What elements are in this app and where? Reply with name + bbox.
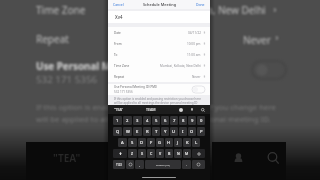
button[interactable]: Y xyxy=(161,127,169,136)
staticText: Never xyxy=(243,33,271,47)
button[interactable]: Use Personal Meeting ID toggle xyxy=(252,61,286,79)
button[interactable]: 8 xyxy=(179,116,187,125)
button[interactable]: Cancel xyxy=(113,2,124,7)
button[interactable]: , xyxy=(135,160,144,169)
button[interactable]: V xyxy=(156,149,164,158)
button[interactable]: T xyxy=(152,127,160,136)
button[interactable]: O xyxy=(188,127,196,136)
staticText: English (US) xyxy=(156,163,170,166)
staticText: E xyxy=(136,129,139,135)
button[interactable]: Enter xyxy=(192,160,205,169)
button[interactable]: Voice input xyxy=(190,108,194,112)
staticText: Mumbai, Kolkata, New Delhi xyxy=(160,64,201,68)
staticText: A xyxy=(121,140,124,146)
button[interactable]: ?123 xyxy=(113,160,125,169)
staticText: Use Personal Me xyxy=(36,60,117,73)
staticText: R xyxy=(146,129,149,135)
button[interactable]: Search xyxy=(201,108,205,112)
staticText: U xyxy=(172,129,176,135)
staticText: Time Zone xyxy=(36,3,86,17)
staticText: Q xyxy=(116,129,120,135)
button[interactable]: 0 xyxy=(197,116,205,125)
staticText: H xyxy=(167,140,171,146)
button[interactable]: Emoji xyxy=(179,108,183,112)
staticText: Repeat xyxy=(114,75,125,79)
button[interactable]: 5 xyxy=(152,116,160,125)
button[interactable]: Repeat xyxy=(108,71,210,82)
staticText: D xyxy=(140,140,144,146)
staticText: 9 xyxy=(191,118,194,124)
button[interactable]: X xyxy=(138,149,146,158)
staticText: 8 xyxy=(182,118,185,124)
button[interactable]: B xyxy=(165,149,173,158)
button[interactable]: H xyxy=(165,138,173,147)
button[interactable]: L xyxy=(192,138,200,147)
staticText: Never xyxy=(192,75,201,79)
staticText: T xyxy=(155,129,158,135)
button[interactable]: C xyxy=(147,149,155,158)
button[interactable]: S xyxy=(128,138,137,147)
button[interactable]: Search xyxy=(267,152,280,165)
staticText: Use Personal Meeting ID (PMI) xyxy=(114,85,157,89)
staticText: N xyxy=(177,151,180,156)
button[interactable]: I xyxy=(179,127,187,136)
staticText: F xyxy=(150,140,153,146)
button[interactable]: Time Zone xyxy=(108,60,210,71)
button[interactable]: From xyxy=(108,38,210,49)
button[interactable]: 3 xyxy=(133,116,142,125)
button[interactable]: A xyxy=(118,138,127,147)
button[interactable]: M xyxy=(183,149,191,158)
button[interactable]: 6 xyxy=(161,116,169,125)
staticText: C xyxy=(150,151,153,156)
button[interactable]: 4 xyxy=(143,116,151,125)
staticText: ?123 xyxy=(116,163,122,167)
staticText: I xyxy=(182,129,184,135)
staticText: a, New Delhi xyxy=(207,3,266,17)
staticText: "TEA" xyxy=(53,151,81,165)
staticText: 04/11/22 xyxy=(188,31,201,35)
button[interactable]: K xyxy=(183,138,191,147)
staticText: L xyxy=(195,140,198,146)
button[interactable]: Shift xyxy=(113,149,127,158)
staticText: Done xyxy=(196,2,205,7)
button[interactable]: E xyxy=(133,127,142,136)
button[interactable]: English (US) xyxy=(145,160,181,169)
button[interactable]: G xyxy=(156,138,164,147)
staticText: 10:00 pm xyxy=(187,42,201,46)
button[interactable]: R xyxy=(143,127,151,136)
button[interactable]: F xyxy=(147,138,155,147)
button[interactable]: Z xyxy=(128,149,137,158)
button[interactable]: Backspace xyxy=(192,149,205,158)
staticText: If this option is enab will be applied t… xyxy=(36,102,111,124)
staticText: , xyxy=(139,163,140,167)
staticText: J xyxy=(177,140,179,146)
button[interactable]: Use Personal Meeting ID toggle xyxy=(192,86,205,93)
button[interactable]: To xyxy=(108,49,210,60)
staticText: B xyxy=(168,151,171,156)
staticText: 6 xyxy=(164,118,167,124)
button[interactable]: J xyxy=(174,138,182,147)
button[interactable]: P xyxy=(197,127,205,136)
staticText: 0 xyxy=(200,118,203,124)
button[interactable]: W xyxy=(123,127,132,136)
staticText: W xyxy=(126,129,130,135)
button[interactable]: Done xyxy=(196,2,205,7)
button[interactable]: Emoji xyxy=(126,160,134,169)
button[interactable]: 9 xyxy=(188,116,196,125)
button[interactable]: Date xyxy=(108,27,210,38)
button[interactable]: Contacts xyxy=(232,152,245,165)
button[interactable]: 1 xyxy=(113,116,122,125)
staticText: Repeat xyxy=(36,32,69,46)
button[interactable]: N xyxy=(174,149,182,158)
button[interactable]: 2 xyxy=(123,116,132,125)
staticText: Z xyxy=(131,151,134,156)
button[interactable]: Use Personal Meeting ID (PMI) xyxy=(108,84,210,95)
button[interactable]: D xyxy=(138,138,146,147)
staticText: 4 xyxy=(146,118,149,124)
button[interactable]: . xyxy=(182,160,191,169)
staticText: . xyxy=(186,163,187,167)
button[interactable]: Q xyxy=(113,127,122,136)
button[interactable]: U xyxy=(170,127,178,136)
button[interactable]: 7 xyxy=(170,116,178,125)
staticText: f you change here onal meeting ID. xyxy=(210,102,276,124)
